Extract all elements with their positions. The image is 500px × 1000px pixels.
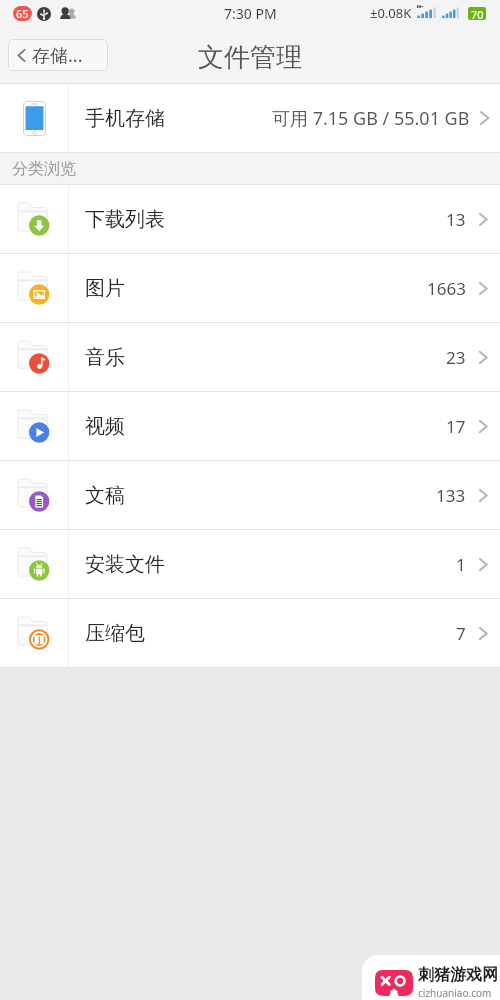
staticText: 刺猪游戏网 [418, 965, 498, 985]
staticText: 17 [446, 415, 466, 438]
staticText: ±0.08K [370, 4, 412, 22]
staticText: 音乐 [85, 345, 125, 370]
button[interactable]: 存储... [8, 39, 108, 71]
staticText: 分类浏览 [12, 159, 76, 179]
staticText: 下载列表 [85, 207, 165, 232]
staticText: 1663 [427, 277, 466, 300]
button[interactable]: 下载列表 [0, 185, 500, 253]
staticText: 133 [436, 484, 466, 507]
staticText: 手机存储 [85, 106, 165, 131]
button[interactable]: 安装文件 [0, 530, 500, 598]
button[interactable]: 压缩包 [0, 599, 500, 667]
button[interactable]: 手机存储 [0, 84, 500, 152]
button[interactable]: 图片 [0, 254, 500, 322]
staticText: 13 [446, 208, 466, 231]
staticText: 可用 7.15 GB / 55.01 GB [272, 106, 470, 131]
staticText: 7:30 PM [224, 4, 277, 23]
staticText: 视频 [85, 414, 125, 439]
staticText: 70 [471, 7, 484, 20]
staticText: 图片 [85, 276, 125, 301]
button[interactable]: 音乐 [0, 323, 500, 391]
staticText: 文稿 [85, 483, 125, 508]
button[interactable]: 视频 [0, 392, 500, 460]
staticText: 7 [456, 622, 466, 645]
staticText: 1 [456, 553, 466, 576]
staticText: 文件管理 [198, 41, 302, 74]
staticText: 压缩包 [85, 621, 145, 646]
staticText: 23 [446, 346, 466, 369]
staticText: 存储... [32, 43, 83, 68]
staticText: cizhuaniao.com [418, 986, 492, 1000]
staticText: 65 [16, 6, 29, 21]
button[interactable]: 文稿 [0, 461, 500, 529]
staticText: 安装文件 [85, 552, 165, 577]
